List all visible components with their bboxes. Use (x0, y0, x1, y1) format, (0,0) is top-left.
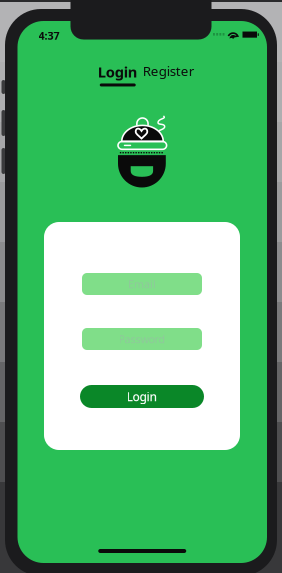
button[interactable]: Login (80, 385, 204, 408)
staticText: Register (143, 62, 195, 80)
staticText: Login (98, 62, 138, 81)
staticText: Email (128, 277, 156, 291)
staticText: Login (126, 388, 157, 404)
staticText: Password (118, 332, 165, 346)
button[interactable]: Email (82, 273, 202, 295)
button[interactable]: Password (82, 328, 202, 350)
button[interactable]: Login (98, 62, 138, 86)
button[interactable]: Register (143, 62, 195, 85)
staticText: 4:37 (38, 28, 59, 43)
